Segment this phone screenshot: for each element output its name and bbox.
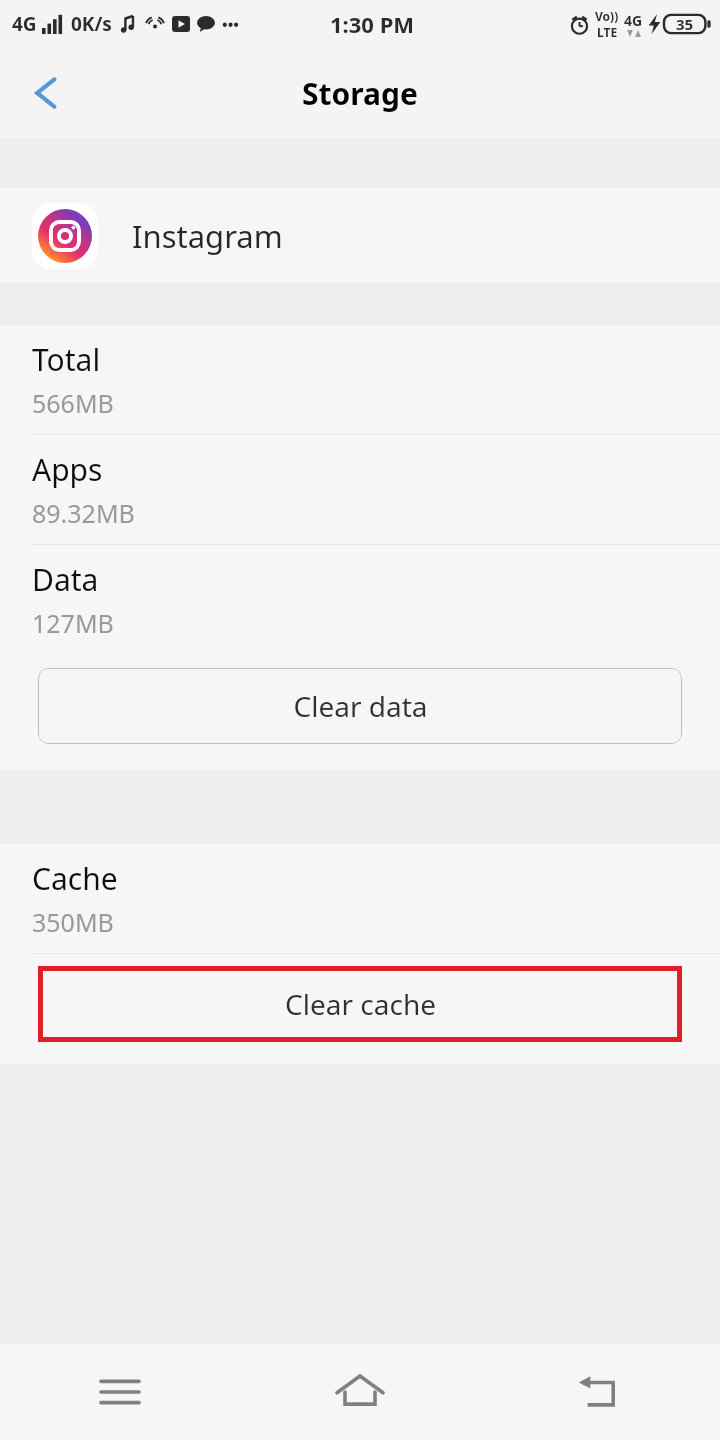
- staticText: Storage: [302, 73, 418, 114]
- staticText: Total: [32, 339, 101, 380]
- staticText: 1:30 PM: [330, 9, 415, 39]
- staticText: LTE: [597, 24, 618, 40]
- staticText: 4G: [12, 11, 37, 37]
- button[interactable]: Home: [240, 1344, 480, 1440]
- staticText: 35: [676, 14, 694, 34]
- button[interactable]: Cache: [0, 844, 720, 953]
- button[interactable]: Instagram: [0, 188, 720, 283]
- button[interactable]: Clear data: [38, 668, 682, 744]
- staticText: 89.32MB: [32, 496, 135, 530]
- staticText: Data: [32, 559, 99, 600]
- button[interactable]: Back: [10, 57, 82, 129]
- staticText: Apps: [32, 449, 103, 490]
- staticText: Clear data: [293, 687, 428, 725]
- staticText: Instagram: [132, 215, 283, 257]
- staticText: 127MB: [32, 606, 114, 640]
- staticText: 350MB: [32, 905, 114, 939]
- button[interactable]: Recent apps: [0, 1344, 240, 1440]
- button[interactable]: Back: [480, 1344, 720, 1440]
- staticText: 0K/s: [71, 11, 112, 37]
- button[interactable]: Clear cache: [38, 966, 682, 1042]
- staticText: Cache: [32, 858, 118, 899]
- button[interactable]: Data: [0, 545, 720, 654]
- staticText: Vo)): [595, 8, 619, 24]
- button[interactable]: Apps: [0, 435, 720, 544]
- staticText: 566MB: [32, 386, 114, 420]
- button[interactable]: Total: [0, 325, 720, 434]
- staticText: 4G: [624, 11, 643, 30]
- staticText: Clear cache: [285, 985, 436, 1023]
- staticText: •••: [222, 14, 239, 34]
